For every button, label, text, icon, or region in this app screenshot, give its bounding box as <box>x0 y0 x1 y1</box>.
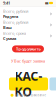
staticText: 9:41 <box>3 0 10 6</box>
staticText: Редукта <box>3 14 18 19</box>
button[interactable]: У Вас будет заявка <box>11 58 45 64</box>
staticText: Всего, рублей <box>3 20 28 25</box>
staticText: ▮▮▮ <box>45 1 48 4</box>
staticText: Всего, рублей <box>3 9 28 14</box>
button[interactable]: КАСКО <box>9 77 48 90</box>
staticText: Сумма <box>3 36 16 41</box>
button[interactable]: Продолжить <box>12 45 44 52</box>
button[interactable]: Всего, рублей <box>0 19 56 30</box>
button[interactable]: Всего, рублей <box>0 8 56 19</box>
staticText: Всего, срока <box>3 31 26 36</box>
button[interactable]: Всего, срока <box>0 30 56 41</box>
staticText: У Вас будет заявка <box>11 58 45 64</box>
staticText: КАСКО <box>14 68 42 100</box>
staticText: Ваш <box>3 25 12 30</box>
staticText: Тинькофф Страхование <box>14 93 45 97</box>
staticText: Продолжить <box>15 46 40 51</box>
